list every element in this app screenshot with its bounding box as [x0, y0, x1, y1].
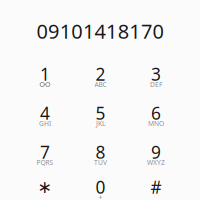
button[interactable]: Pound — [130, 175, 182, 200]
staticText: WXYZ — [147, 158, 165, 167]
staticText — [155, 193, 157, 200]
staticText: GHI — [39, 119, 51, 128]
staticText: 1 — [40, 62, 50, 85]
staticText: 7 — [40, 140, 50, 163]
staticText: MNO — [148, 119, 164, 128]
staticText: PQRS — [36, 158, 53, 167]
staticText: ∗ — [37, 177, 52, 197]
staticText: 6 — [151, 101, 161, 124]
staticText: 5 — [95, 101, 105, 124]
staticText: 09101418170 — [36, 18, 163, 44]
button[interactable]: 3 — [130, 62, 182, 92]
staticText: 2 — [95, 62, 105, 85]
button[interactable]: 2 — [74, 62, 126, 92]
button[interactable]: 9 — [130, 140, 182, 170]
button[interactable]: 1 — [19, 62, 71, 92]
staticText: ABC — [94, 80, 106, 89]
button[interactable]: 7 — [19, 140, 71, 170]
staticText: JKL — [96, 119, 105, 128]
button[interactable]: 0 — [74, 175, 126, 200]
staticText: 3 — [151, 62, 161, 85]
staticText: 4 — [40, 101, 50, 124]
staticText: TUV — [94, 158, 107, 167]
button[interactable]: 4 — [19, 101, 71, 131]
staticText: + — [98, 193, 102, 200]
button[interactable]: 6 — [130, 101, 182, 131]
staticText: 0 — [95, 175, 105, 198]
staticText: 9 — [151, 140, 161, 163]
button[interactable]: 5 — [74, 101, 126, 131]
staticText: DEF — [150, 80, 162, 89]
staticText: 8 — [95, 140, 105, 163]
button[interactable]: Star — [19, 175, 71, 200]
button[interactable]: 8 — [74, 140, 126, 170]
staticText: # — [150, 175, 161, 198]
button[interactable]: Entered number 09101418170 — [20, 19, 180, 43]
